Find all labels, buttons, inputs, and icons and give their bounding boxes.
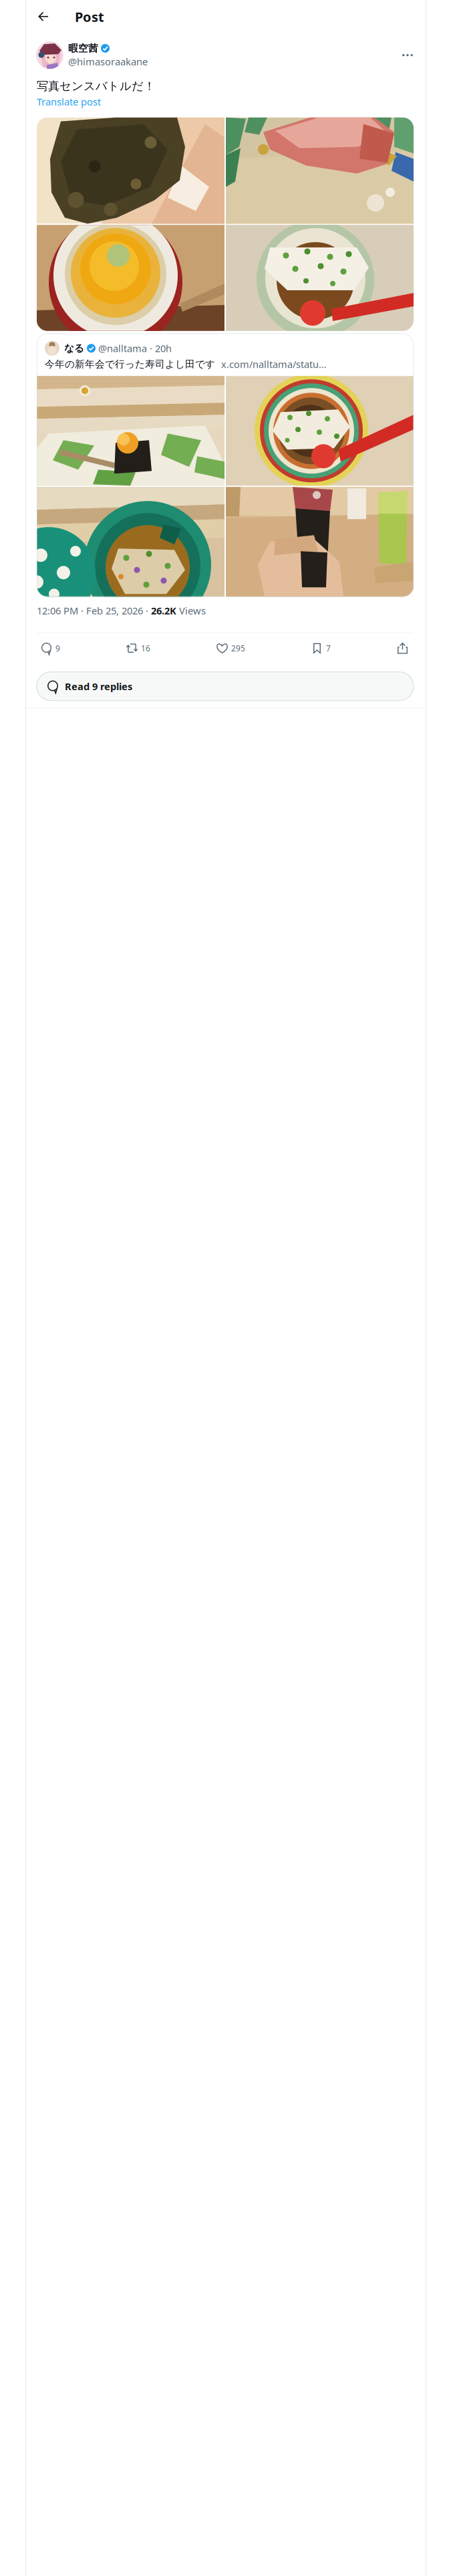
staticText: Views [176, 604, 206, 617]
button[interactable]: Reply [39, 639, 61, 657]
staticText: Read 9 replies [65, 680, 132, 693]
staticText: 12:06 PM · Feb 25, 2026 · [37, 604, 151, 617]
button[interactable]: Read 9 replies [37, 672, 414, 701]
button[interactable]: Share [396, 639, 410, 657]
staticText: 9 [55, 643, 60, 653]
button[interactable]: Repost [125, 639, 152, 657]
button[interactable]: Translate post [37, 93, 101, 108]
staticText: @himasoraakane [68, 55, 148, 68]
staticText: 7 [326, 643, 331, 653]
staticText: Post [75, 8, 104, 26]
staticText: 16 [141, 643, 150, 653]
button[interactable]: More [398, 45, 418, 65]
staticText: x.com/nalltama/statu… [221, 358, 327, 371]
staticText: 暇空茜 [68, 42, 98, 54]
button[interactable]: Back [32, 5, 55, 28]
staticText: 今年の新年会で行った寿司よし田です [45, 358, 215, 370]
staticText: Translate post [37, 95, 101, 108]
staticText: @nalltama · 20h [98, 342, 172, 355]
button[interactable]: Photos [37, 118, 414, 331]
button[interactable]: Quoted post by なる [37, 334, 414, 597]
staticText: 26.2K [151, 604, 176, 617]
button[interactable]: Profile photo [36, 41, 63, 69]
staticText: なる [64, 342, 84, 354]
staticText: 写真センスバトルだ！ [37, 79, 155, 93]
button[interactable]: Bookmark [310, 639, 332, 657]
button[interactable]: Like [215, 639, 247, 657]
staticText: 295 [231, 643, 245, 653]
